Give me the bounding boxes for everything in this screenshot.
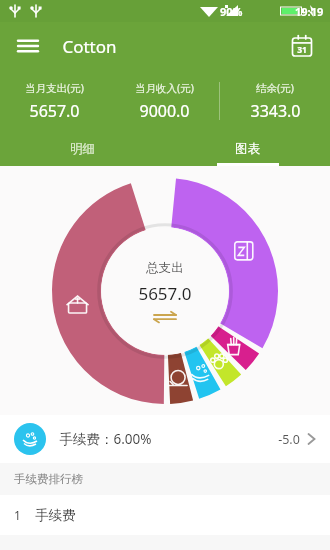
staticText: 手续费：6.00% [59,430,152,448]
button[interactable]: 当月收入(元) [109,70,219,132]
staticText: 图表 [235,141,260,157]
staticText: 手续费排行榜 [14,472,83,486]
staticText: 1 [14,507,21,523]
staticText: 当月支出(元) [25,81,84,95]
button[interactable]: 明细 [0,132,165,166]
button[interactable]: Calendar [284,28,320,64]
button[interactable]: 结余(元) [220,70,330,132]
staticText: -5.0 [278,431,300,448]
staticText: 总支出 [146,260,184,276]
button[interactable]: 图表 [165,132,330,166]
staticText: 19:19 [295,4,324,19]
staticText: 31 [297,44,307,56]
button[interactable]: 当月支出(元) [0,70,109,132]
staticText: 手续费 [35,507,76,524]
button[interactable]: Menu [10,28,46,64]
staticText: 90% [220,4,243,19]
staticText: 明细 [70,141,95,157]
staticText: 当月收入(元) [135,81,194,95]
staticText: 9000.0 [139,100,190,122]
staticText: 5657.0 [29,100,80,122]
button[interactable]: 手续费：6.00% [0,415,330,463]
staticText: 结余(元) [256,81,294,95]
button[interactable]: Expense pie chart [52,178,278,404]
staticText: 3343.0 [250,100,301,122]
staticText: Cotton [62,35,117,58]
staticText: 5657.0 [138,282,192,305]
button[interactable]: 1 [0,495,330,535]
